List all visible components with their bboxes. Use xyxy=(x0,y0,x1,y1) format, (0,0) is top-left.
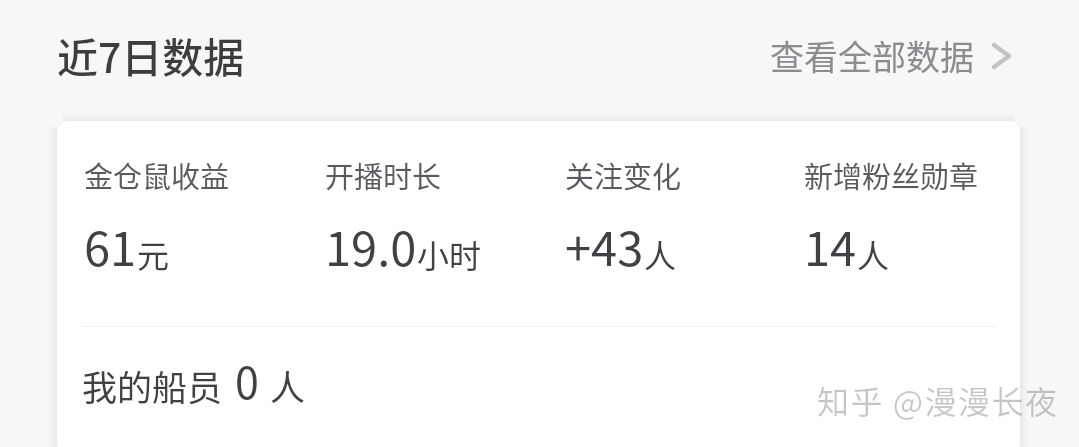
staticText: 0 xyxy=(235,349,259,411)
staticText: +43 xyxy=(565,211,644,279)
button[interactable]: 近7日数据 xyxy=(57,25,245,84)
button[interactable]: 新增粉丝勋章 xyxy=(792,146,999,287)
staticText: 元 xyxy=(137,231,170,277)
staticText: 新增粉丝勋章 xyxy=(804,154,979,196)
button[interactable]: 我的船员 xyxy=(76,343,312,417)
button[interactable]: 关注变化 xyxy=(553,146,702,287)
staticText: 近7日数据 xyxy=(57,25,245,84)
staticText: 关注变化 xyxy=(565,154,682,196)
staticText: 我的船员 xyxy=(82,360,223,411)
staticText: 开播时长 xyxy=(325,154,442,196)
staticText: 小时 xyxy=(417,231,482,277)
button[interactable]: 开播时长 xyxy=(313,146,502,287)
staticText: 61 xyxy=(84,211,137,279)
button[interactable]: 金仓鼠收益 xyxy=(72,146,250,287)
staticText: 知乎 @漫漫长夜 xyxy=(817,377,1059,423)
button[interactable]: 查看全部数据 xyxy=(762,23,1023,88)
staticText: 查看全部数据 xyxy=(770,31,974,80)
staticText: 人 xyxy=(857,231,890,277)
staticText: 人 xyxy=(270,360,306,411)
staticText: 人 xyxy=(644,231,677,277)
staticText: 金仓鼠收益 xyxy=(84,154,230,196)
staticText: 14 xyxy=(804,211,857,279)
staticText: 19.0 xyxy=(325,211,417,279)
other: View all data xyxy=(985,41,1015,71)
